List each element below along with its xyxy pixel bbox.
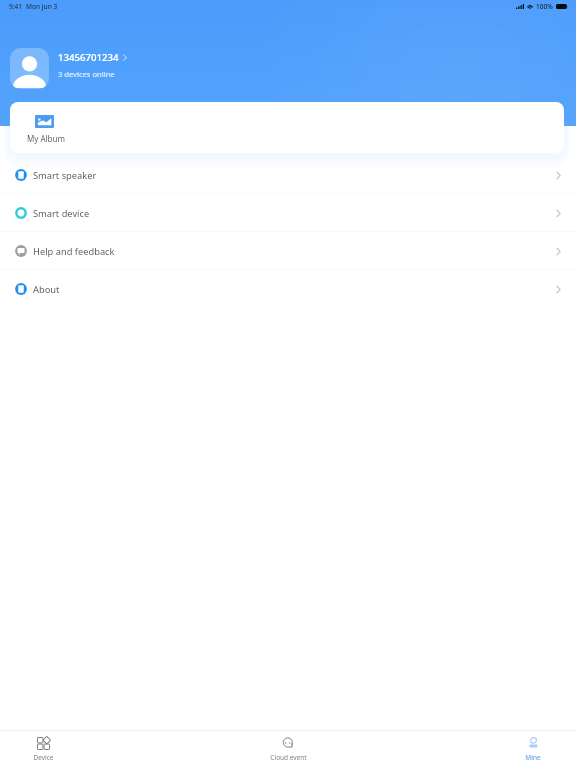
button[interactable]: About <box>0 270 576 308</box>
staticText: 13456701234 <box>58 51 119 64</box>
staticText: Smart device <box>33 207 90 220</box>
staticText: Mine <box>525 753 541 762</box>
button[interactable]: Smart speaker <box>0 156 576 194</box>
staticText: Help and feedback <box>33 245 115 258</box>
button[interactable]: Device <box>22 737 64 762</box>
button[interactable]: Smart device <box>0 194 576 232</box>
button[interactable]: Help and feedback <box>0 232 576 270</box>
staticText: About <box>33 283 60 296</box>
button[interactable]: My Album <box>20 115 72 144</box>
staticText: Smart speaker <box>33 169 97 182</box>
button[interactable]: Cloud event <box>267 737 309 762</box>
staticText: Device <box>33 753 54 762</box>
staticText: My Album <box>27 133 65 144</box>
staticText: 9:41 <box>9 2 22 11</box>
button[interactable]: Mine <box>512 737 554 762</box>
staticText: Cloud event <box>270 753 307 762</box>
staticText: 100% <box>536 2 553 11</box>
staticText: Mon Jun 3 <box>26 2 58 11</box>
staticText: 3 devices online <box>58 69 115 79</box>
button[interactable]: 13456701234 <box>10 48 127 89</box>
